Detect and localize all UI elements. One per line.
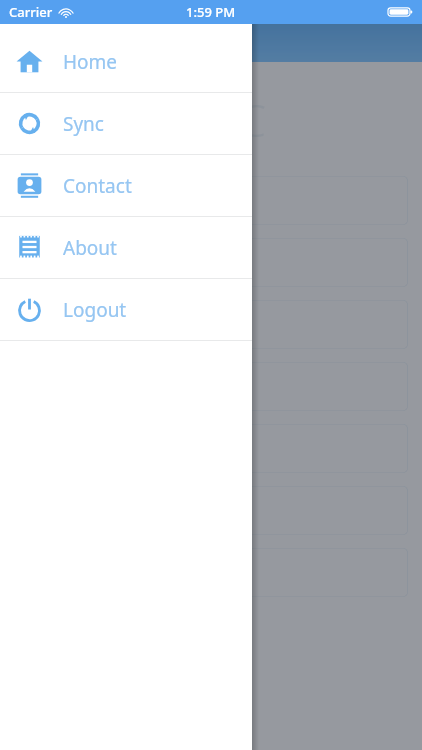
- button[interactable]: About: [0, 217, 252, 278]
- staticText: About: [63, 235, 117, 261]
- button[interactable]: Home: [0, 31, 252, 92]
- staticText: Carrier: [9, 3, 53, 21]
- button[interactable]: JOB LIST: [14, 362, 408, 411]
- button[interactable]: NEW REPORT: [14, 176, 408, 225]
- button[interactable]: Sync: [0, 93, 252, 154]
- staticText: Contact: [63, 173, 132, 199]
- button[interactable]: Logout: [0, 279, 252, 340]
- staticText: Home: [63, 49, 118, 75]
- button[interactable]: Contact: [0, 155, 252, 216]
- button[interactable]: REPORT: [14, 300, 408, 349]
- staticText: NEW REPORT: [28, 190, 128, 212]
- staticText: Logout: [63, 297, 127, 323]
- staticText: Sync: [63, 111, 104, 137]
- button[interactable]: REPORT: [14, 548, 408, 597]
- button[interactable]: LIST: [14, 424, 408, 473]
- staticText: HVAC: [157, 90, 266, 150]
- staticText: REGISTER: [28, 252, 101, 274]
- button[interactable]: REGISTER: [14, 238, 408, 287]
- button[interactable]: RECORD: [14, 486, 408, 535]
- staticText: REPORT: [28, 314, 88, 336]
- staticText: 1:59 PM: [186, 3, 236, 21]
